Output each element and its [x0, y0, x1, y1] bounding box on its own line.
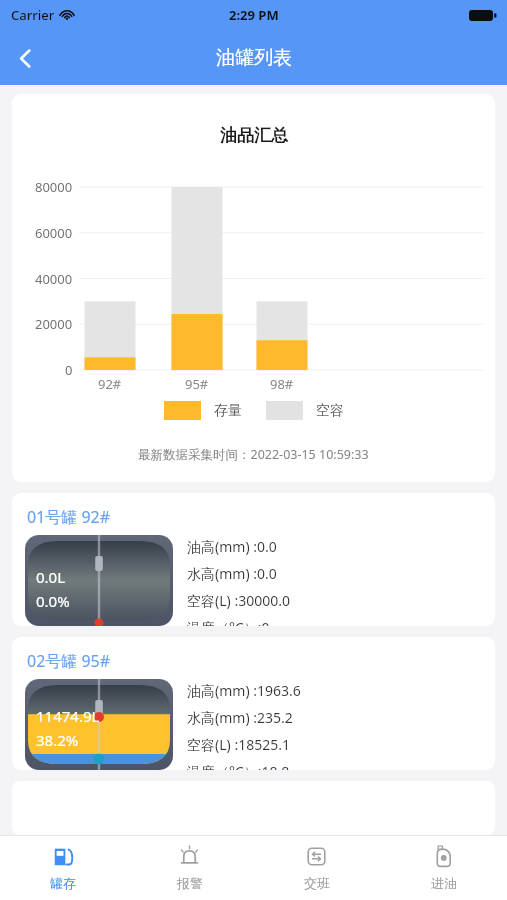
staticText: 95# — [185, 375, 209, 393]
staticText: 油品汇总 — [220, 125, 288, 146]
button[interactable]: 01号罐 92# — [12, 493, 495, 626]
button[interactable]: 罐存 — [0, 836, 126, 900]
button[interactable]: Back — [0, 33, 50, 83]
staticText: 11474.9L — [36, 706, 100, 726]
staticText: Carrier — [11, 6, 55, 24]
button[interactable]: 02号罐 95# — [12, 637, 495, 770]
staticText: 0.0L — [36, 567, 66, 587]
button[interactable]: 进油 — [380, 836, 507, 900]
staticText: 02号罐 95# — [27, 650, 111, 672]
staticText: 报警 — [177, 875, 203, 891]
staticText: 空容(L) :30000.0 — [187, 591, 290, 610]
staticText: 油高(mm) :1963.6 — [187, 681, 301, 700]
staticText: 空容 — [316, 402, 344, 420]
staticText: 2:29 PM — [229, 6, 279, 24]
staticText: 罐存 — [50, 875, 76, 891]
staticText: 0 — [65, 361, 73, 379]
staticText: 水高(mm) :0.0 — [187, 564, 277, 583]
staticText: 空容(L) :18525.1 — [187, 735, 290, 754]
staticText: 01号罐 92# — [27, 506, 111, 528]
staticText: 20000 — [35, 315, 73, 333]
button[interactable]: 报警 — [126, 836, 253, 900]
staticText: 60000 — [35, 224, 73, 242]
staticText: 交班 — [304, 875, 330, 891]
staticText: 最新数据采集时间：2022-03-15 10:59:33 — [138, 446, 369, 463]
staticText: 温度（°C）:18.8 — [187, 762, 290, 770]
staticText: 温度（°C）:0 — [187, 618, 270, 626]
staticText: 98# — [270, 375, 294, 393]
staticText: 存量 — [214, 402, 242, 420]
staticText: 进油 — [431, 875, 457, 891]
staticText: 92# — [98, 375, 122, 393]
staticText: 0.0% — [36, 591, 70, 611]
staticText: 38.2% — [36, 730, 79, 750]
staticText: 水高(mm) :235.2 — [187, 708, 293, 727]
button[interactable]: 交班 — [253, 836, 380, 900]
staticText: 油高(mm) :0.0 — [187, 537, 277, 556]
staticText: 油罐列表 — [216, 46, 292, 70]
staticText: 40000 — [35, 270, 73, 288]
staticText: 80000 — [35, 178, 73, 196]
